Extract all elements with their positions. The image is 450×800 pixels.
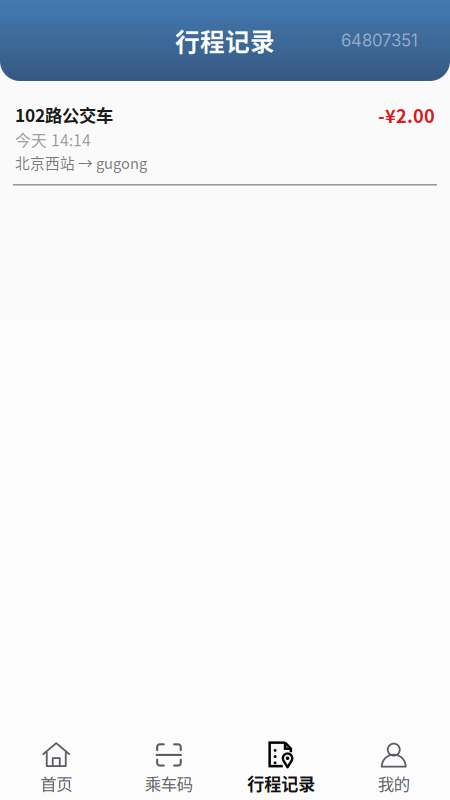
staticText: 乘车码: [145, 771, 193, 795]
button[interactable]: 102路公交车: [0, 81, 450, 185]
button[interactable]: 首页: [0, 715, 112, 800]
staticText: 行程记录: [247, 771, 315, 795]
staticText: 行程记录: [175, 23, 275, 58]
staticText: 北京西站 → gugong: [15, 152, 147, 173]
staticText: -¥2.00: [378, 102, 435, 128]
button[interactable]: 64807351: [341, 30, 450, 51]
staticText: 102路公交车: [15, 102, 113, 127]
staticText: 首页: [40, 771, 72, 795]
staticText: 64807351: [341, 30, 418, 51]
button[interactable]: 我的: [337, 715, 450, 800]
staticText: 我的: [378, 771, 410, 795]
staticText: 今天 14:14: [15, 128, 91, 151]
button[interactable]: 行程记录: [225, 715, 337, 800]
button[interactable]: 乘车码: [112, 715, 225, 800]
